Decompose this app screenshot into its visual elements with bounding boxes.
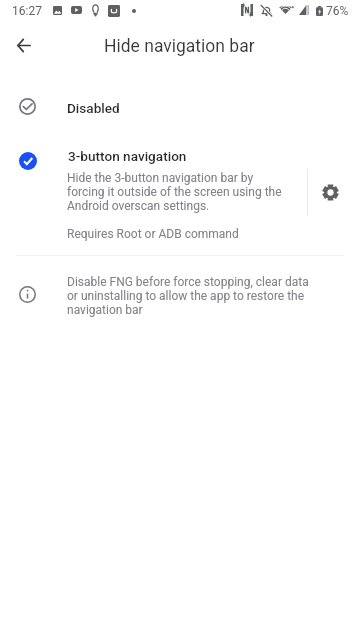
staticText: 16:27 (12, 4, 42, 18)
button[interactable]: Settings (306, 168, 354, 216)
staticText: Disable FNG before force stopping, clear… (67, 275, 311, 317)
staticText: Requires Root or ADB command (67, 227, 239, 241)
button[interactable]: Back (4, 25, 44, 65)
staticText: Hide the 3-button navigation bar by forc… (67, 171, 286, 213)
staticText: Hide navigation bar (104, 36, 255, 57)
button[interactable]: Disabled (0, 86, 360, 126)
staticText: 3-button navigation (68, 148, 187, 164)
button[interactable] (0, 140, 360, 248)
staticText: 76% (326, 4, 349, 18)
staticText: Disabled (67, 100, 120, 116)
